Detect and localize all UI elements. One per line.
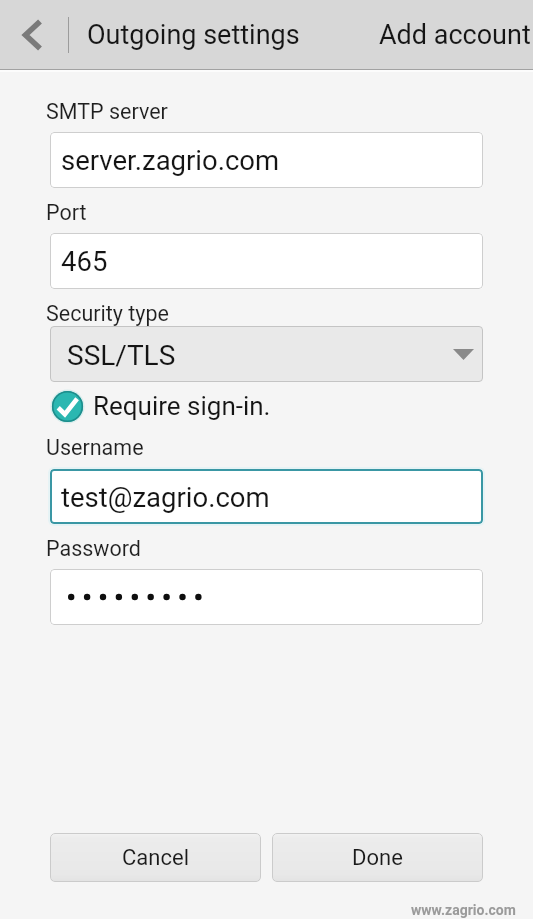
button[interactable]: test@zagrio.com [50,469,483,524]
staticText: Username [46,435,144,460]
staticText: Add account [379,19,531,51]
staticText: Outgoing settings [87,19,300,51]
staticText: SSL/TLS [67,339,176,372]
staticText: test@zagrio.com [61,481,270,513]
staticText: Port [46,200,87,225]
button[interactable]: 465 [50,233,483,289]
button[interactable]: Done [272,833,483,882]
button[interactable]: Cancel [50,833,261,882]
button[interactable]: Require sign-in. [50,388,271,424]
button[interactable]: Back [0,0,64,70]
staticText: Cancel [122,845,189,871]
staticText: SMTP server [46,99,168,124]
staticText: Password [46,536,141,561]
staticText: Done [352,845,403,871]
staticText: www.zagrio.com [411,902,516,918]
staticText: 465 [61,245,108,277]
button[interactable]: server.zagrio.com [50,132,483,188]
staticText: Security type [46,301,170,326]
button[interactable] [50,569,483,625]
button[interactable]: SSL/TLS [50,326,483,382]
staticText: Require sign-in. [93,391,271,421]
staticText: server.zagrio.com [61,144,280,176]
